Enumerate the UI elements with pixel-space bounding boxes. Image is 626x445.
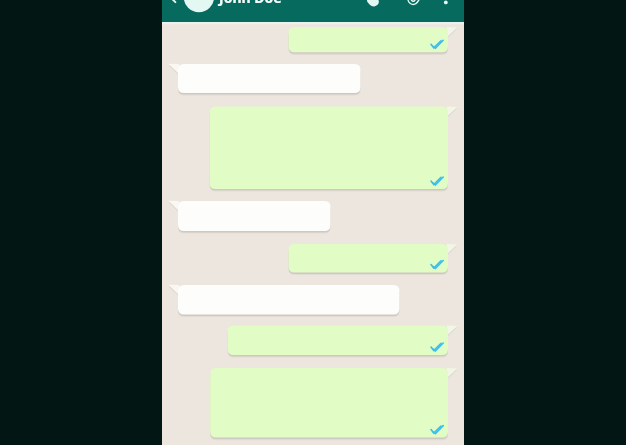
button[interactable]: More options (434, 0, 458, 22)
button[interactable]: Back (162, 0, 184, 22)
button[interactable]: Video call (361, 0, 385, 22)
staticText: John Doe (219, 0, 282, 7)
button[interactable]: Contact photo (184, 0, 214, 22)
button[interactable]: John Doe (219, 0, 282, 7)
button[interactable]: Attach (402, 0, 426, 22)
